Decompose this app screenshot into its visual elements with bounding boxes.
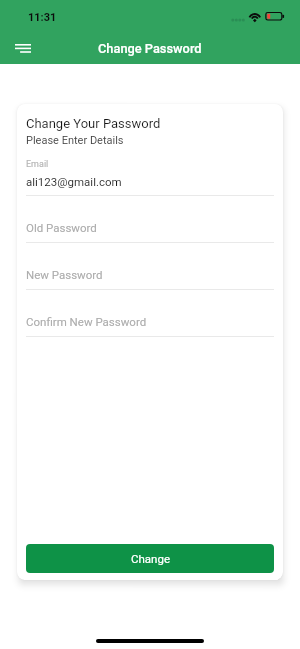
staticText: 11:31 bbox=[28, 11, 57, 24]
button[interactable]: New Password bbox=[26, 243, 274, 290]
staticText: Email bbox=[26, 159, 49, 170]
staticText: Change bbox=[131, 552, 170, 565]
button[interactable]: Email bbox=[26, 159, 274, 196]
staticText: Change Password bbox=[98, 41, 202, 56]
button[interactable]: Open navigation menu bbox=[7, 32, 39, 64]
button[interactable]: Confirm New Password bbox=[26, 290, 274, 337]
button[interactable]: Old Password bbox=[26, 196, 274, 243]
staticText: New Password bbox=[26, 268, 103, 281]
staticText: Old Password bbox=[26, 221, 97, 234]
staticText: Confirm New Password bbox=[26, 315, 147, 328]
staticText: ali123@gmail.com bbox=[26, 175, 122, 188]
button[interactable]: Change bbox=[26, 544, 274, 573]
staticText: Please Enter Details bbox=[26, 134, 124, 147]
staticText: Change Your Password bbox=[26, 116, 161, 131]
